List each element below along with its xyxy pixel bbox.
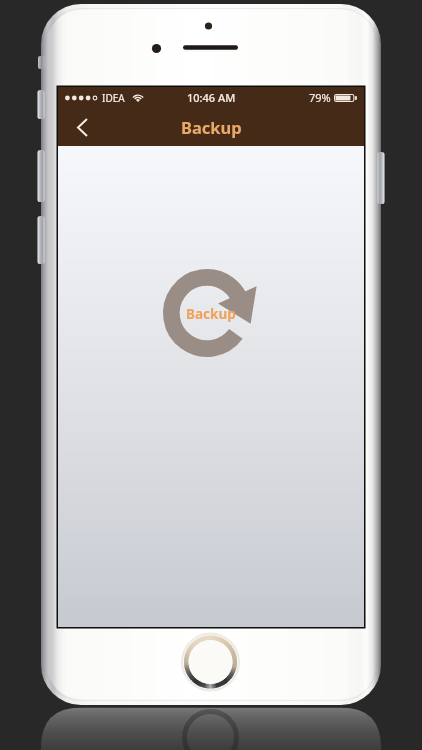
staticText: 79% <box>309 90 331 105</box>
staticText: Backup <box>181 116 242 138</box>
button[interactable]: Back <box>60 108 104 146</box>
staticText: IDEA <box>102 91 125 105</box>
staticText: 10:46 AM <box>187 90 236 105</box>
staticText: Backup <box>186 305 236 323</box>
